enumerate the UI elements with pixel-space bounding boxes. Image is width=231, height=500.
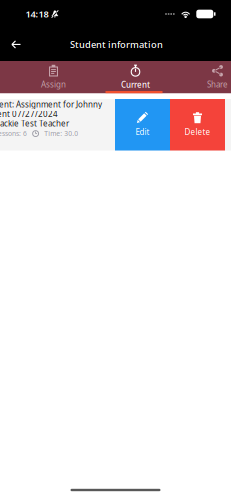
staticText: Student information	[70, 38, 163, 51]
button[interactable]: Back	[0, 28, 31, 61]
staticText: Delete	[184, 127, 210, 137]
staticText: Time: 30.0	[44, 129, 78, 138]
staticText: Teacher: Jackie Test Teacher	[0, 118, 69, 129]
staticText: Current	[121, 79, 150, 90]
staticText: Share	[207, 79, 228, 90]
staticText: Edit	[135, 126, 149, 137]
button[interactable]: Assign	[12, 61, 94, 93]
button[interactable]: Share	[176, 61, 231, 93]
button[interactable]: Delete	[170, 99, 225, 150]
button[interactable]: Edit	[115, 99, 170, 150]
staticText: 14:18	[25, 8, 48, 20]
staticText: Assignment Sent 07/27/2024	[0, 109, 58, 119]
staticText: Lessons: 6	[0, 129, 27, 138]
staticText: Assignment: Assignment for Johnny	[0, 99, 102, 110]
staticText: Assign	[41, 79, 66, 90]
button[interactable]: Current	[94, 61, 176, 93]
